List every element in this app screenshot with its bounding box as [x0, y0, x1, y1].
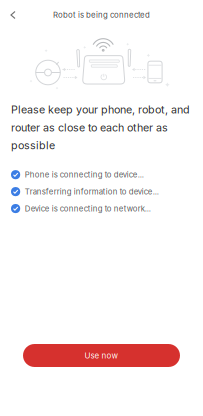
- staticText: Robot is being connected: [53, 10, 150, 20]
- staticText: Use now: [84, 351, 118, 360]
- staticText: Device is connecting to network...: [25, 204, 151, 213]
- button[interactable]: Back: [0, 2, 26, 28]
- staticText: Transferring information to device...: [25, 187, 159, 196]
- staticText: Please keep your phone, robot, and route…: [11, 103, 190, 152]
- button[interactable]: Use now: [23, 344, 180, 367]
- staticText: Phone is connecting to device...: [25, 170, 144, 179]
